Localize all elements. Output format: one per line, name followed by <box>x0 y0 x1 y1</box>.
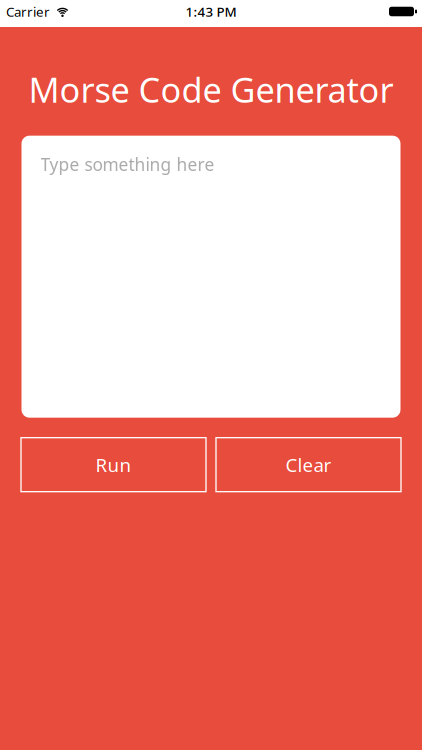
staticText: Carrier <box>6 3 50 20</box>
staticText: Type something here <box>40 153 214 176</box>
staticText: 1:43 PM <box>185 3 236 20</box>
button[interactable]: Clear <box>216 438 401 492</box>
staticText: Run <box>95 452 131 477</box>
staticText: Morse Code Generator <box>28 66 393 113</box>
button[interactable]: Type something here <box>21 136 400 418</box>
staticText: Clear <box>285 452 331 477</box>
button[interactable]: Run <box>21 438 206 492</box>
